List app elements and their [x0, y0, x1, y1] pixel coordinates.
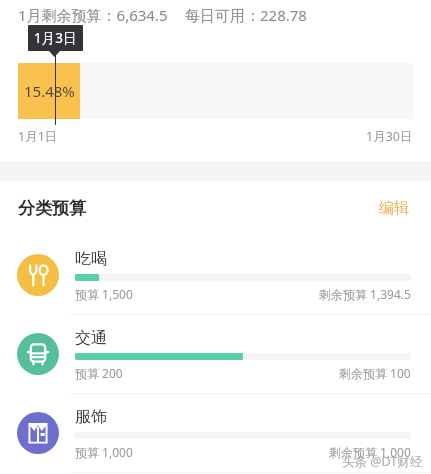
button[interactable]: Transport: [0, 315, 431, 393]
staticText: 1月30日: [366, 128, 413, 145]
staticText: 剩余预算 1,000: [329, 444, 411, 460]
staticText: 分类预算: [18, 198, 86, 219]
staticText: 预算 200: [75, 365, 123, 381]
button[interactable]: Food: [0, 236, 431, 314]
staticText: 15.48%: [24, 81, 75, 101]
other: Clothing: [25, 420, 51, 446]
staticText: 剩余预算 100: [339, 365, 411, 381]
staticText: 1月剩余预算：6,634.5: [18, 5, 168, 25]
staticText: 服饰: [75, 407, 107, 427]
button[interactable]: Clothing: [0, 394, 431, 472]
staticText: 预算 1,000: [75, 444, 133, 460]
staticText: 交通: [75, 328, 107, 348]
staticText: 1月3日: [34, 29, 77, 47]
button[interactable]: 编辑: [375, 193, 413, 224]
staticText: 1月1日: [18, 128, 58, 145]
staticText: 吃喝: [75, 249, 107, 269]
staticText: 头条 @DT财经: [342, 453, 423, 470]
other: Food: [27, 264, 50, 287]
staticText: 每日可用：228.78: [185, 5, 307, 25]
staticText: 编辑: [379, 199, 409, 218]
staticText: 剩余预算 1,394.5: [319, 286, 411, 302]
other: Transport: [26, 342, 50, 366]
staticText: 预算 1,500: [75, 286, 133, 302]
